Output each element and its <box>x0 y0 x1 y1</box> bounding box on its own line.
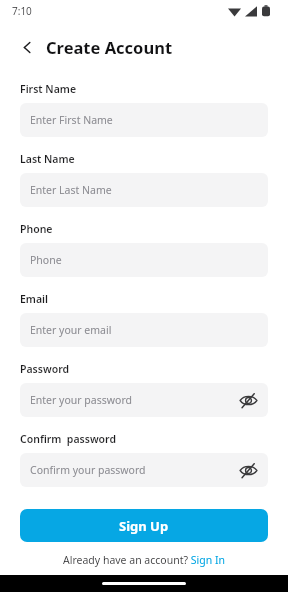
button[interactable]: Enter First Name <box>20 103 268 137</box>
staticText: Enter your password <box>30 393 132 407</box>
staticText: First Name <box>20 82 77 96</box>
staticText: Enter Last Name <box>30 183 112 197</box>
staticText: Phone <box>20 222 53 236</box>
button[interactable]: Sign Up <box>20 509 268 542</box>
button[interactable]: Enter Last Name <box>20 173 268 207</box>
staticText: Sign Up <box>119 517 169 535</box>
staticText: Password <box>20 362 70 376</box>
button[interactable]: Enter your email <box>20 313 268 347</box>
staticText: Enter First Name <box>30 113 113 127</box>
button[interactable]: Confirm your password <box>20 453 268 487</box>
staticText: 7:10 <box>12 4 32 18</box>
button[interactable]: Toggle password visibility <box>233 455 263 485</box>
staticText: Already have an account? Sign In <box>63 553 225 567</box>
staticText: Enter your email <box>30 323 112 337</box>
staticText: Last Name <box>20 152 75 166</box>
staticText: Phone <box>30 253 62 267</box>
button[interactable]: Enter your password <box>20 383 268 417</box>
staticText: Create Account <box>46 36 173 58</box>
staticText: Confirm your password <box>30 463 146 477</box>
button[interactable]: Already have an account? Sign In <box>20 553 268 567</box>
staticText: Email <box>20 292 49 306</box>
button[interactable]: Back <box>14 34 40 60</box>
staticText: Confirm password <box>20 432 117 446</box>
button[interactable]: Toggle password visibility <box>233 385 263 415</box>
button[interactable]: Phone <box>20 243 268 277</box>
